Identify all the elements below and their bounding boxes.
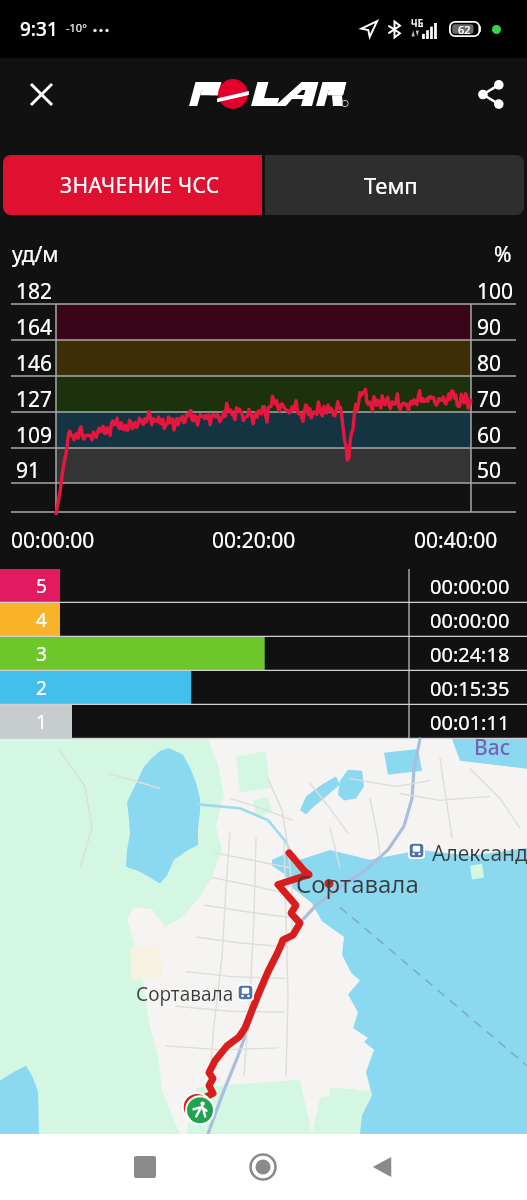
- staticText: 109: [16, 421, 53, 450]
- button[interactable]: Recent apps: [117, 1139, 173, 1195]
- staticText: 9:31: [20, 16, 58, 42]
- staticText: Сортавала: [296, 867, 419, 900]
- staticText: уд/м: [12, 240, 59, 269]
- staticText: 90: [477, 313, 502, 342]
- button[interactable]: 4: [0, 603, 527, 637]
- staticText: 60: [477, 421, 502, 450]
- staticText: 00:40:00: [414, 526, 498, 555]
- staticText: 5: [36, 573, 47, 599]
- staticText: 50: [477, 456, 502, 485]
- staticText: 3: [36, 641, 47, 667]
- staticText: 00:00:00: [430, 573, 510, 600]
- staticText: 100: [477, 277, 514, 306]
- button[interactable]: 2: [0, 671, 527, 705]
- staticText: 00:01:11: [430, 709, 510, 736]
- staticText: ЗНАЧЕНИЕ ЧСС: [60, 171, 220, 200]
- staticText: 00:00:00: [430, 607, 510, 634]
- staticText: 1: [36, 709, 47, 735]
- staticText: 00:15:35: [430, 675, 510, 702]
- staticText: Александр: [432, 839, 527, 868]
- staticText: 70: [477, 385, 502, 414]
- staticText: 62: [458, 22, 471, 37]
- staticText: Сортавала: [136, 981, 234, 1007]
- button[interactable]: 5: [0, 569, 527, 603]
- button[interactable]: Share: [464, 67, 518, 121]
- button[interactable]: Back: [354, 1139, 410, 1195]
- staticText: 00:00:00: [11, 526, 95, 555]
- staticText: 00:24:18: [430, 641, 510, 668]
- button[interactable]: 1: [0, 705, 527, 739]
- staticText: 80: [477, 349, 502, 378]
- staticText: 164: [16, 313, 53, 342]
- button[interactable]: ЗНАЧЕНИЕ ЧСС: [3, 155, 262, 215]
- staticText: Темп: [364, 170, 418, 200]
- button[interactable]: Темп: [265, 155, 524, 215]
- staticText: 91: [16, 456, 41, 485]
- staticText: 2: [36, 675, 47, 701]
- button[interactable]: Home: [235, 1139, 291, 1195]
- staticText: -10°: [66, 20, 87, 35]
- staticText: %: [494, 240, 512, 269]
- staticText: 182: [16, 277, 53, 306]
- staticText: 4: [36, 607, 47, 633]
- button[interactable]: Close: [14, 67, 68, 121]
- staticText: 127: [16, 385, 53, 414]
- staticText: Вас: [474, 733, 511, 762]
- staticText: 00:20:00: [212, 526, 296, 555]
- button[interactable]: 3: [0, 637, 527, 671]
- staticText: 146: [16, 349, 53, 378]
